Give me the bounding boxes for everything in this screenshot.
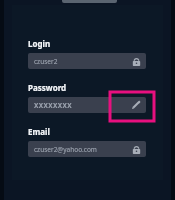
button[interactable]: XXXXXXXX <box>28 97 146 113</box>
staticText: XXXXXXXX <box>34 101 73 110</box>
staticText: czuser2@yahoo.com <box>34 145 97 154</box>
staticText: Email <box>28 126 50 137</box>
button[interactable]: Edit password <box>131 100 141 110</box>
other: Locked <box>132 145 141 154</box>
other: Locked <box>132 57 141 66</box>
button[interactable]: czuser2@yahoo.com <box>28 141 146 157</box>
button[interactable]: czuser2 <box>28 53 146 69</box>
staticText: Password <box>28 82 67 93</box>
staticText: Login <box>28 38 51 49</box>
staticText: czuser2 <box>34 57 58 66</box>
